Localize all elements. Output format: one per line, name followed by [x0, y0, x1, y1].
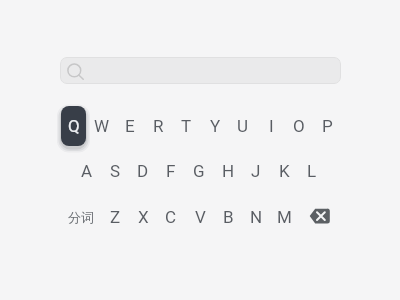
staticText: O [293, 116, 305, 136]
staticText: B [223, 207, 234, 227]
staticText: A [81, 161, 93, 181]
button[interactable]: N [242, 196, 270, 238]
button[interactable]: D [129, 150, 157, 192]
button[interactable]: K [270, 150, 298, 192]
button[interactable]: G [185, 150, 213, 192]
staticText: Z [110, 207, 121, 227]
button[interactable]: 分词 [61, 199, 101, 235]
staticText: R [153, 116, 164, 136]
staticText: V [195, 207, 206, 227]
staticText: G [193, 161, 205, 181]
button[interactable]: E [116, 105, 144, 147]
button[interactable] [60, 57, 341, 84]
button[interactable]: Q [61, 106, 86, 146]
staticText: S [110, 161, 121, 181]
staticText: Q [68, 116, 80, 136]
staticText: W [94, 116, 110, 136]
button[interactable]: I [257, 105, 285, 147]
staticText: U [237, 116, 249, 136]
button[interactable]: J [242, 150, 270, 192]
staticText: D [137, 161, 149, 181]
button[interactable]: L [298, 150, 326, 192]
staticText: 分词 [68, 209, 94, 225]
button[interactable]: F [157, 150, 185, 192]
button[interactable]: A [73, 150, 101, 192]
button[interactable]: T [172, 105, 200, 147]
staticText: N [250, 207, 263, 227]
staticText: E [125, 116, 135, 136]
button[interactable]: R [144, 105, 172, 147]
button[interactable]: O [285, 105, 313, 147]
button[interactable]: P [313, 105, 341, 147]
staticText: P [322, 116, 333, 136]
staticText: T [181, 116, 192, 136]
button[interactable]: X [129, 196, 157, 238]
button[interactable]: Y [201, 105, 229, 147]
button[interactable]: W [88, 105, 116, 147]
staticText: C [165, 207, 177, 227]
staticText: M [277, 207, 292, 227]
staticText: H [222, 161, 235, 181]
staticText: F [166, 161, 176, 181]
button[interactable]: S [101, 150, 129, 192]
staticText: X [138, 207, 149, 227]
button[interactable]: Z [101, 196, 129, 238]
button[interactable]: B [214, 196, 242, 238]
button[interactable]: M [270, 196, 298, 238]
staticText: Y [210, 116, 221, 136]
button[interactable]: V [186, 196, 214, 238]
staticText: K [279, 161, 290, 181]
button[interactable]: C [157, 196, 185, 238]
staticText: J [251, 161, 261, 181]
button[interactable]: H [214, 150, 242, 192]
button[interactable]: U [229, 105, 257, 147]
button[interactable] [306, 203, 334, 229]
staticText: I [269, 116, 274, 136]
staticText: L [307, 161, 317, 181]
